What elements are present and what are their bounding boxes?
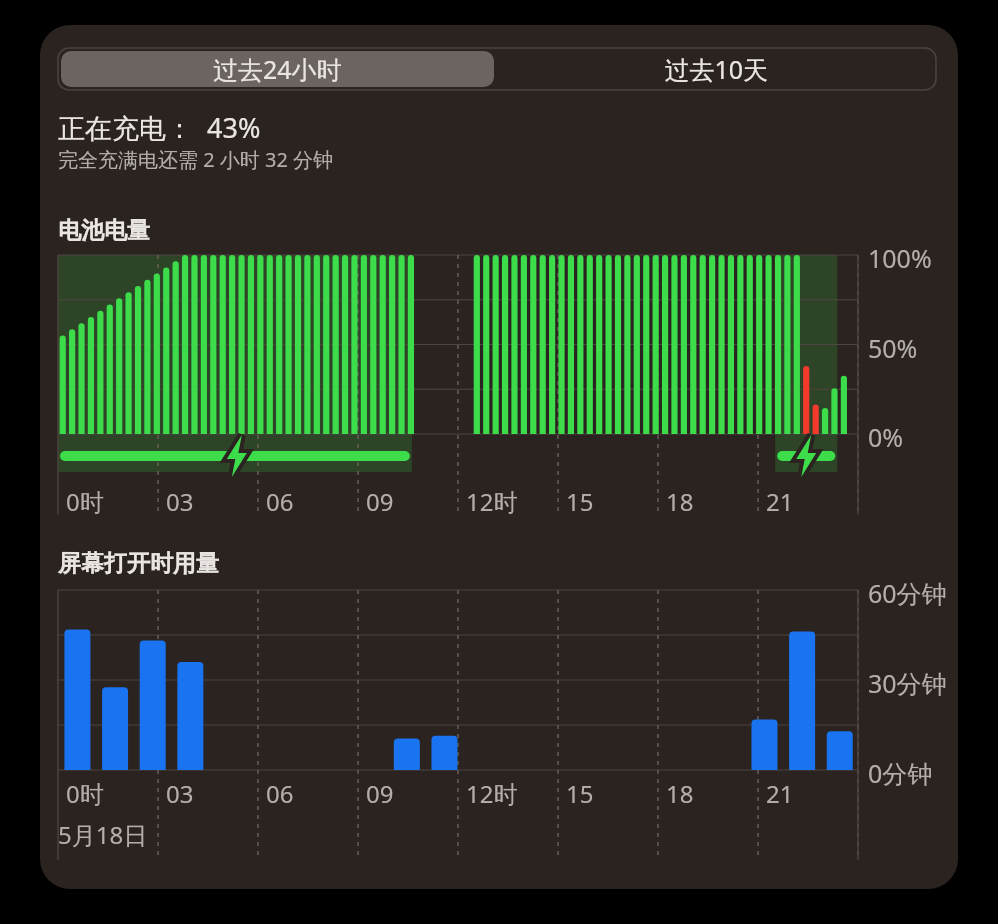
button[interactable]: 过去24小时 bbox=[58, 48, 497, 90]
button[interactable]: 过去10天 bbox=[497, 48, 936, 90]
